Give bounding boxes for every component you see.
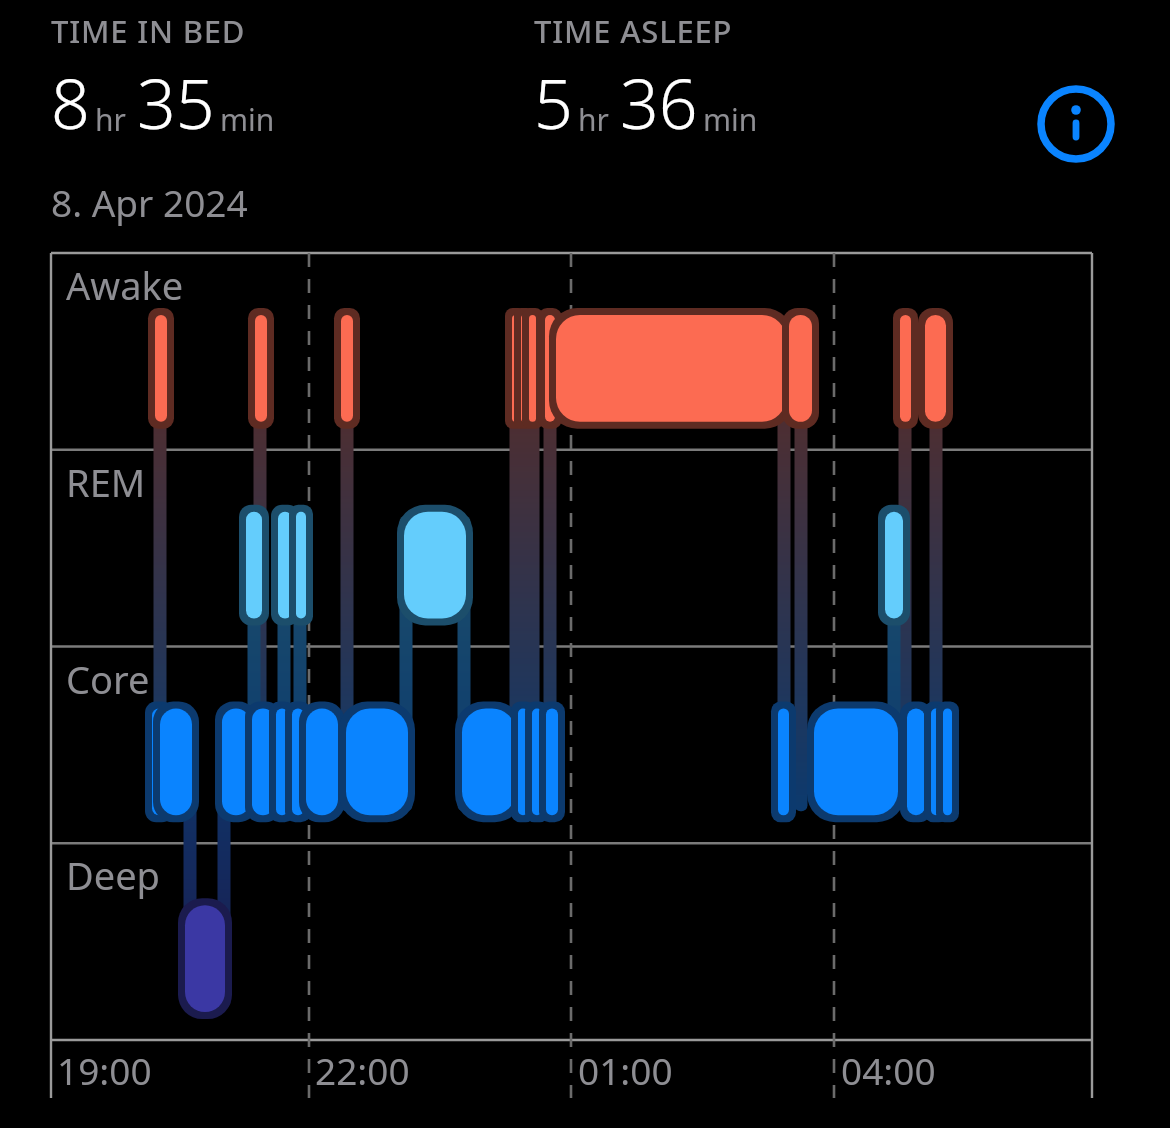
staticText: Awake [66,259,184,311]
staticText: 04:00 [841,1045,936,1095]
button[interactable]: Info [1036,84,1116,164]
staticText: hr [578,99,609,140]
staticText: Core [66,653,150,705]
staticText: 8 [51,56,90,149]
staticText: 35 [137,56,215,149]
staticText: 01:00 [578,1045,673,1095]
staticText: 36 [620,56,698,149]
staticText: 22:00 [315,1045,410,1095]
staticText: 5 [534,56,573,149]
staticText: Deep [66,849,160,901]
staticText: REM [66,456,146,508]
staticText: 8. Apr 2024 [51,177,248,227]
staticText: TIME ASLEEP [534,10,733,52]
staticText: min [220,99,275,140]
staticText: min [703,99,758,140]
staticText: 19:00 [57,1045,152,1095]
staticText: hr [95,99,126,140]
staticText: TIME IN BED [51,10,246,52]
